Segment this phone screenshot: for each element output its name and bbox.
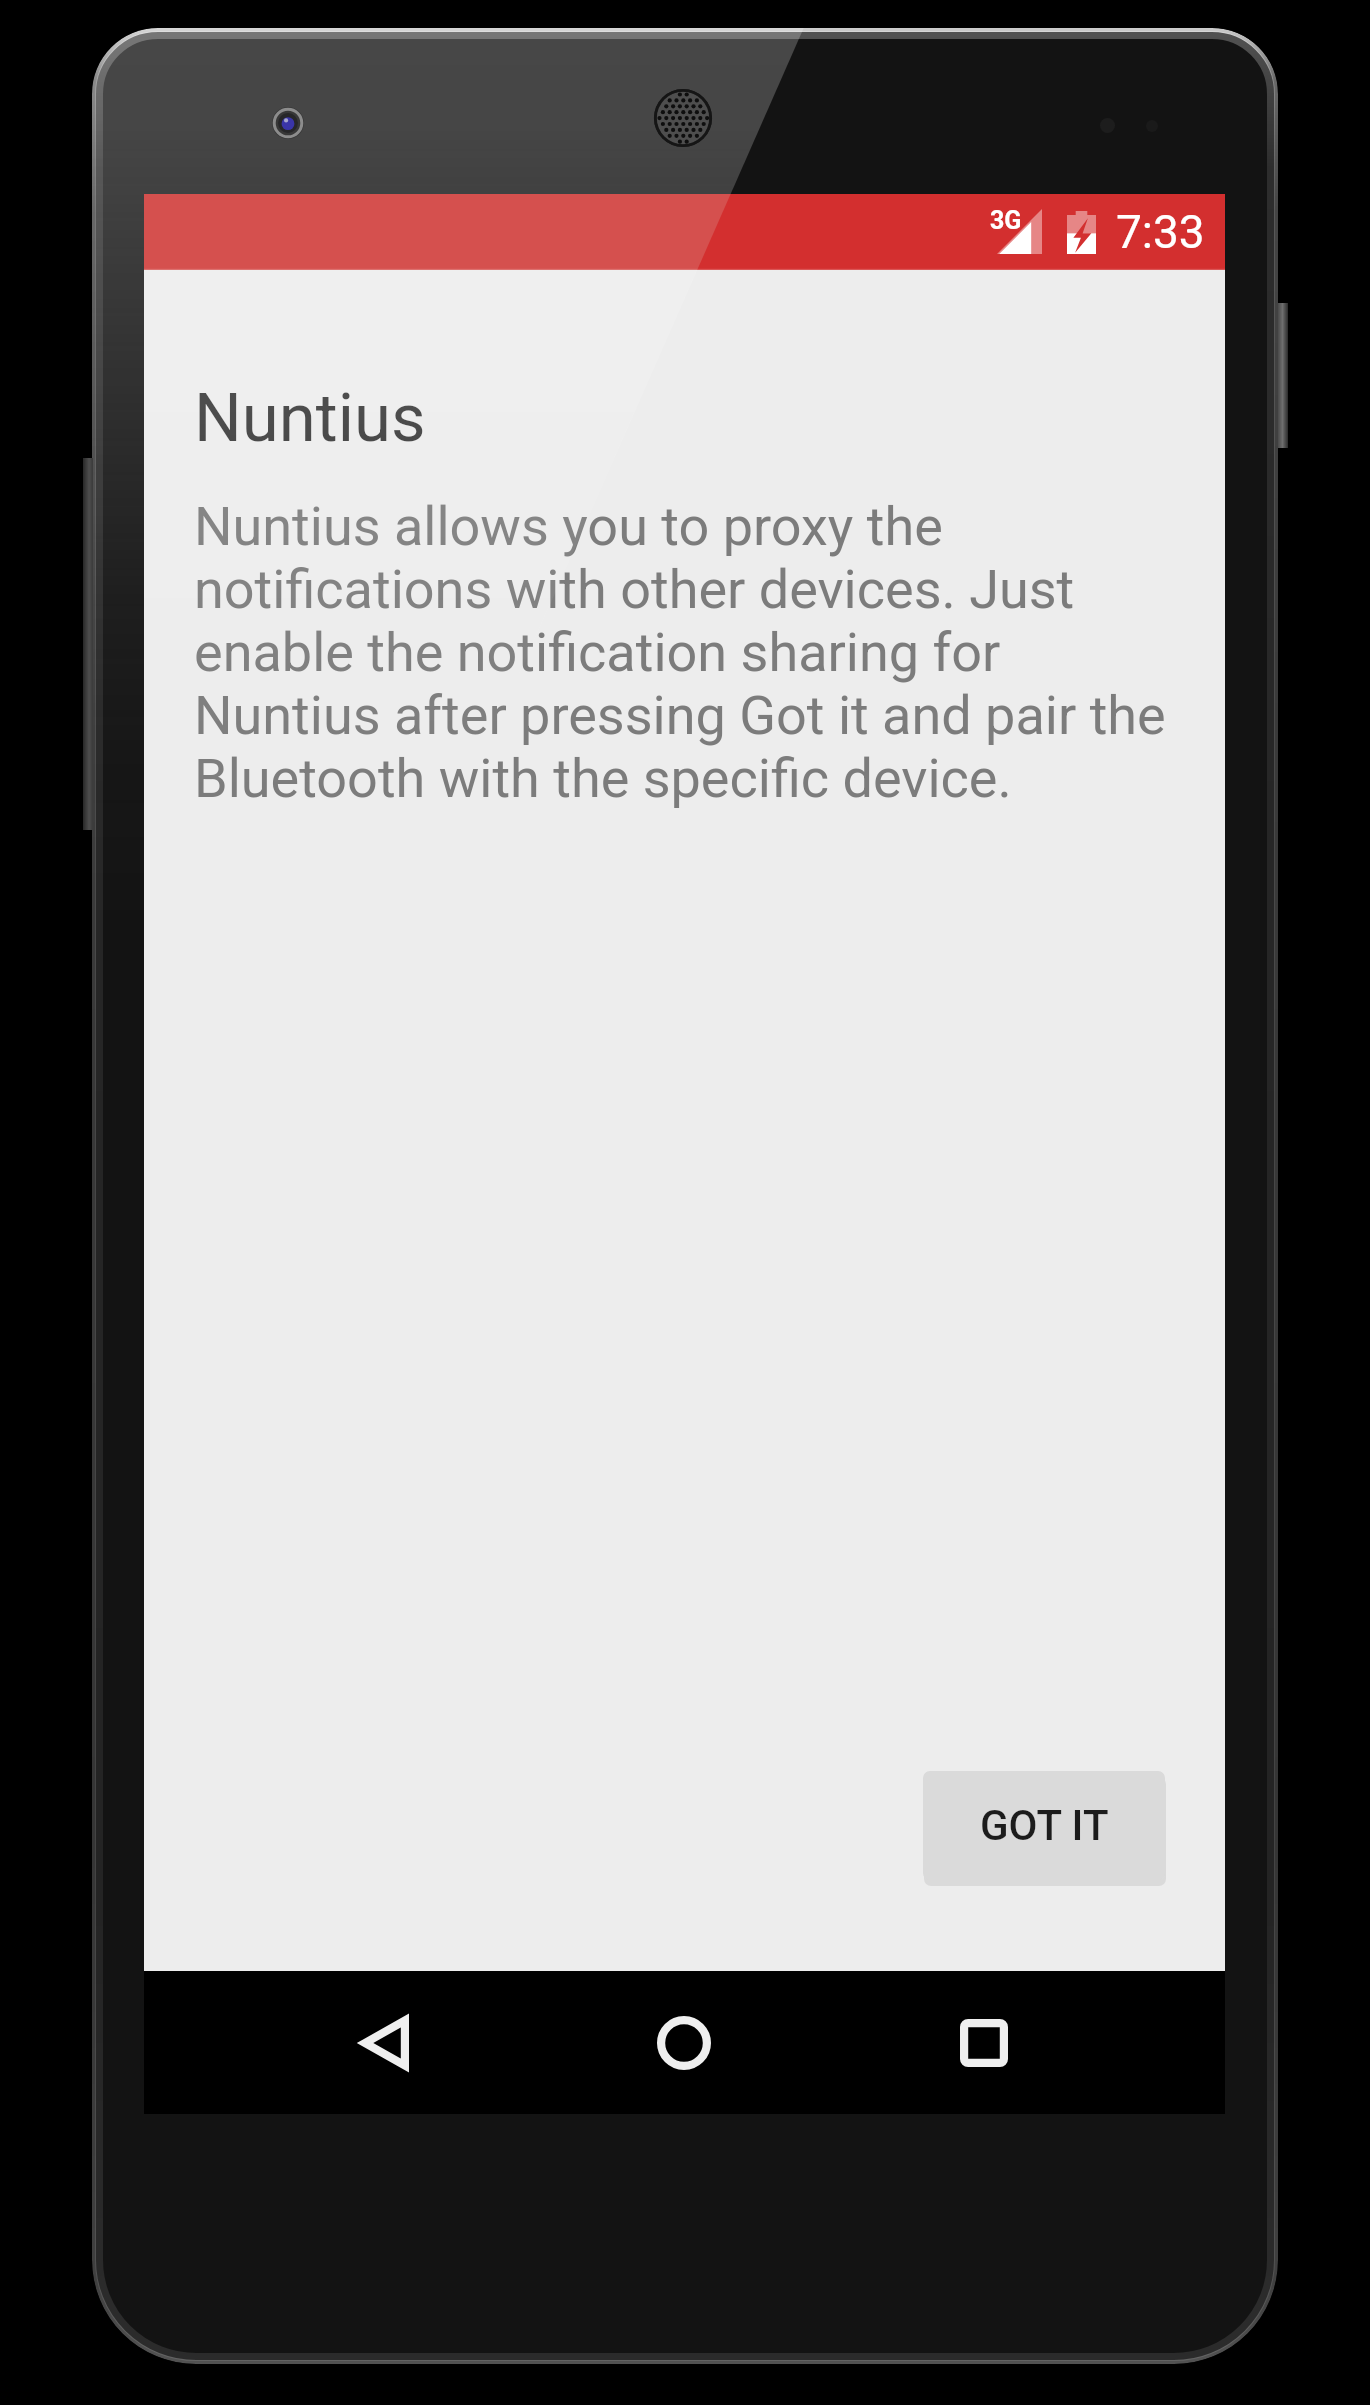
button[interactable]: Back	[309, 1971, 459, 2114]
button[interactable]: Home	[609, 1971, 759, 2114]
staticText: Nuntius allows you to proxy the notifica…	[194, 495, 1183, 810]
staticText: 3G	[990, 206, 1022, 235]
staticText: GOT IT	[980, 1801, 1109, 1850]
button[interactable]: GOT IT	[923, 1771, 1165, 1880]
button[interactable]: Recent apps	[909, 1971, 1059, 2114]
staticText: 7:33	[1116, 205, 1205, 259]
staticText: Nuntius	[194, 379, 426, 458]
